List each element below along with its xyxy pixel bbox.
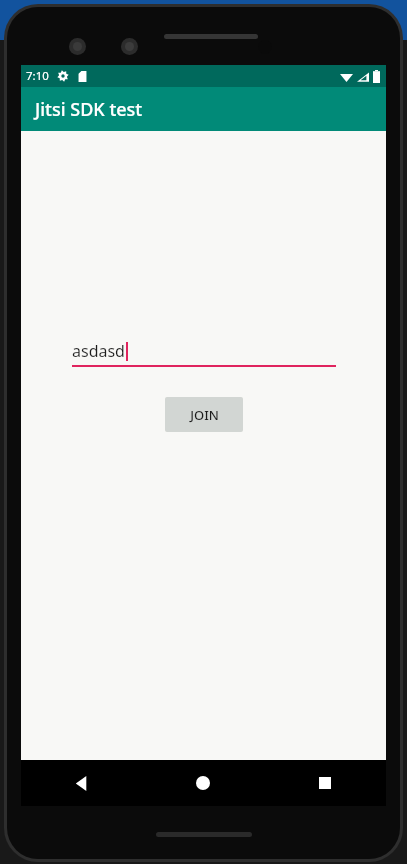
staticText: 7:10 (26, 68, 49, 84)
staticText: JOIN (190, 406, 219, 424)
button[interactable]: Recent apps (264, 760, 386, 806)
staticText: asdasd (72, 340, 125, 362)
button[interactable]: JOIN (165, 397, 243, 432)
button[interactable]: asdasd (72, 335, 336, 367)
button[interactable]: Home (142, 760, 264, 806)
staticText: Jitsi SDK test (35, 97, 143, 122)
button[interactable]: Back (21, 760, 142, 806)
